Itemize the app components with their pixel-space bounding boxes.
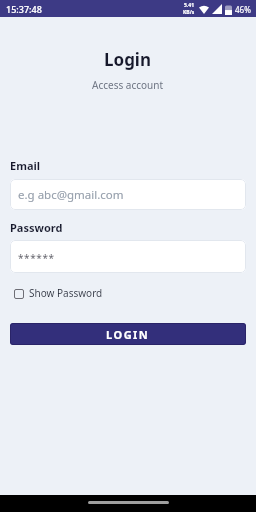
staticText: Password (10, 220, 63, 235)
staticText: Show Password (29, 286, 103, 300)
staticText: KB/s (183, 9, 195, 16)
button[interactable]: e.g abc@gmail.com (10, 179, 246, 210)
staticText: 15:37:48 (6, 3, 42, 15)
staticText: ****** (18, 251, 55, 265)
staticText: LOGIN (106, 327, 150, 342)
staticText: Login (104, 48, 152, 71)
staticText: 46% (235, 4, 251, 15)
button[interactable]: LOGIN (10, 323, 246, 345)
staticText: 5.41 (184, 2, 194, 9)
button[interactable]: Show Password (14, 286, 103, 300)
staticText: Email (10, 158, 41, 173)
button[interactable]: ****** (10, 240, 246, 273)
staticText: Access account (92, 78, 164, 92)
staticText: e.g abc@gmail.com (18, 187, 124, 203)
